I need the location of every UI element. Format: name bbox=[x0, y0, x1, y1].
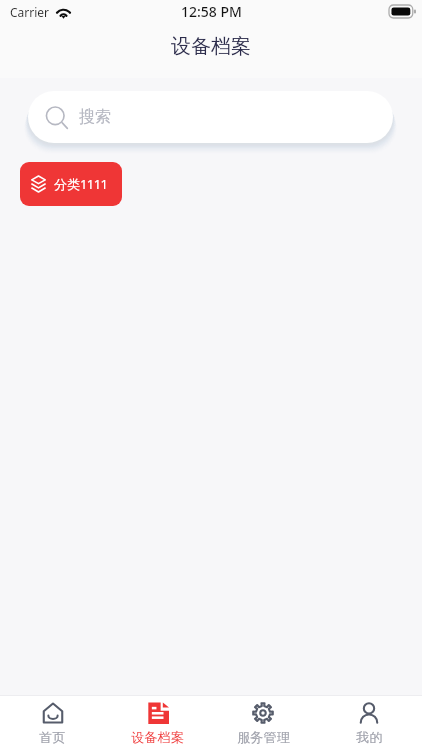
staticText: 我的 bbox=[356, 729, 383, 746]
button[interactable]: 设备档案 bbox=[105, 698, 210, 750]
staticText: 首页 bbox=[39, 729, 66, 746]
button[interactable]: 首页 bbox=[0, 698, 105, 750]
staticText: 服务管理 bbox=[237, 729, 290, 746]
staticText: 设备档案 bbox=[171, 34, 251, 59]
button[interactable]: 搜索 bbox=[28, 91, 393, 143]
staticText: 设备档案 bbox=[131, 729, 184, 746]
button[interactable]: 分类 bbox=[20, 162, 122, 206]
staticText: 12:58 PM bbox=[181, 2, 242, 21]
button[interactable]: 我的 bbox=[316, 698, 422, 750]
staticText: 1111 bbox=[80, 175, 108, 193]
staticText: Carrier bbox=[10, 4, 50, 20]
button[interactable]: 服务管理 bbox=[210, 698, 316, 750]
staticText: 分类 bbox=[54, 176, 80, 192]
staticText: 搜索 bbox=[79, 107, 111, 127]
